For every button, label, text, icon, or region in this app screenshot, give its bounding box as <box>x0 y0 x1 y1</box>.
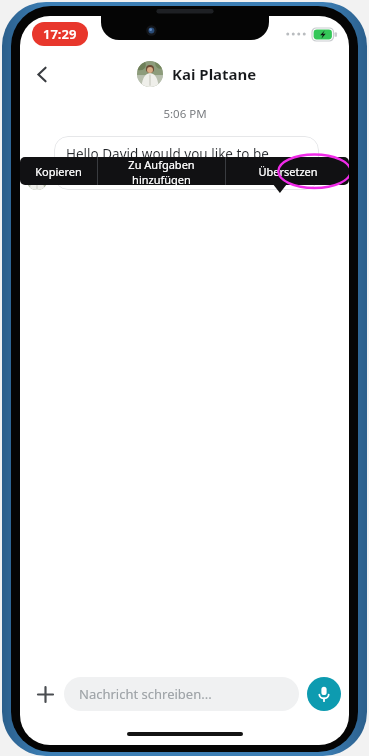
button[interactable]: Zu Aufgaben hinzufügen <box>98 157 225 185</box>
button[interactable]: Nachricht schreiben... <box>64 677 299 711</box>
button[interactable]: Add attachment <box>28 677 62 711</box>
staticText: Kopieren <box>35 164 82 179</box>
staticText: 17:29 <box>43 25 77 43</box>
button[interactable]: Kai Platane <box>137 61 257 87</box>
button[interactable]: Voice message <box>307 677 341 711</box>
button[interactable]: Kopieren <box>20 157 97 185</box>
staticText: Nachricht schreiben... <box>79 685 212 703</box>
staticText: 5:06 PM <box>163 106 207 122</box>
staticText: Hello David would you like to be startin… <box>66 145 269 181</box>
button[interactable]: Hello David would you like to be startin… <box>54 136 319 190</box>
staticText: Übersetzen <box>258 164 318 179</box>
staticText: Zu Aufgaben hinzufügen <box>98 157 225 185</box>
button[interactable]: Übersetzen <box>226 157 349 185</box>
button[interactable]: Back <box>20 52 64 96</box>
staticText: Kai Platane <box>172 64 257 84</box>
